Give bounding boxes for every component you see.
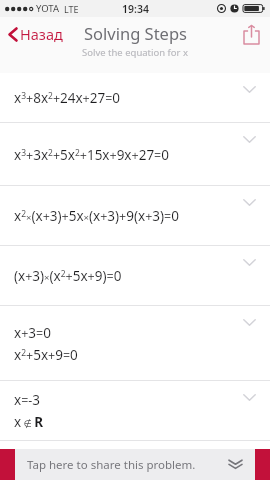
button[interactable]: Назад <box>5 22 66 46</box>
button[interactable]: x3+3x2+5x2+15x+9x+27=0 <box>0 123 270 186</box>
staticText: x ∉ R <box>14 413 44 431</box>
staticText: x2×(x+3)+5x×(x+3)+9(x+3)=0 <box>14 207 179 225</box>
staticText: Solve the equation for x <box>82 46 189 59</box>
staticText: x2+5x+9=0 <box>14 346 78 364</box>
staticText: Tap here to share this problem. <box>27 457 196 473</box>
staticText: Назад <box>20 24 63 44</box>
staticText: (x+3)×(x2+5x+9)=0 <box>14 267 122 285</box>
staticText: YOTA <box>36 2 60 15</box>
staticText: x=-3 <box>14 391 41 409</box>
staticText: LTE <box>64 3 79 15</box>
button[interactable]: x2×(x+3)+5x×(x+3)+9(x+3)=0 <box>0 186 270 246</box>
button[interactable]: x+3=0 <box>0 306 270 381</box>
button[interactable]: x3+8x2+24x+27=0 <box>0 73 270 123</box>
button[interactable]: (x+3)×(x2+5x+9)=0 <box>0 246 270 306</box>
button[interactable]: x=-3 <box>0 381 270 441</box>
staticText: Solving Steps <box>84 22 187 44</box>
staticText: x+3=0 <box>14 324 51 342</box>
staticText: x3+8x2+24x+27=0 <box>14 89 121 107</box>
staticText: x3+3x2+5x2+15x+9x+27=0 <box>14 146 169 164</box>
staticText: 19:34 <box>122 2 149 16</box>
button[interactable]: Share <box>239 20 264 49</box>
button[interactable]: Tap here to share this problem. <box>15 449 255 480</box>
